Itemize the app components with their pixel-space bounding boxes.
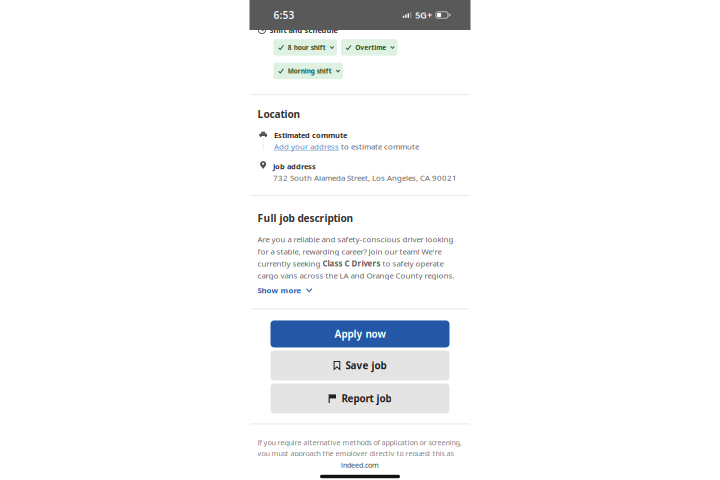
staticText: Apply now [334, 327, 385, 341]
staticText: Overtime [355, 43, 386, 52]
staticText: Morning shift [288, 66, 332, 75]
staticText: Save job [345, 359, 386, 372]
button[interactable]: Morning shift [273, 63, 343, 79]
staticText: Location [257, 107, 300, 121]
button[interactable]: 8 hour shift [273, 39, 337, 56]
button[interactable]: Show more [257, 285, 312, 295]
button[interactable]: Save job [270, 350, 449, 380]
staticText: Estimated commute [274, 130, 347, 140]
staticText: 732 South Alameda Street, Los Angeles, C… [273, 172, 457, 183]
staticText: Job address [273, 161, 316, 171]
button[interactable]: Overtime [341, 39, 397, 56]
staticText: 5G+ [415, 9, 432, 21]
button[interactable]: Apply now [270, 320, 449, 347]
staticText: Are you a reliable and safety-conscious … [257, 234, 454, 281]
button[interactable]: Add your address to estimate commute [274, 141, 419, 151]
staticText: indeed.com [341, 460, 379, 470]
staticText: If you require alternative methods of ap… [257, 437, 461, 458]
staticText: 8 hour shift [288, 43, 326, 52]
button[interactable]: Report job [270, 383, 449, 413]
staticText: Shift and schedule [269, 25, 337, 35]
staticText: Report job [341, 392, 391, 405]
staticText: Add your address to estimate commute [274, 141, 419, 151]
staticText: Full job description [257, 211, 353, 225]
staticText: Show more [257, 285, 301, 295]
staticText: 6:53 [273, 8, 294, 22]
